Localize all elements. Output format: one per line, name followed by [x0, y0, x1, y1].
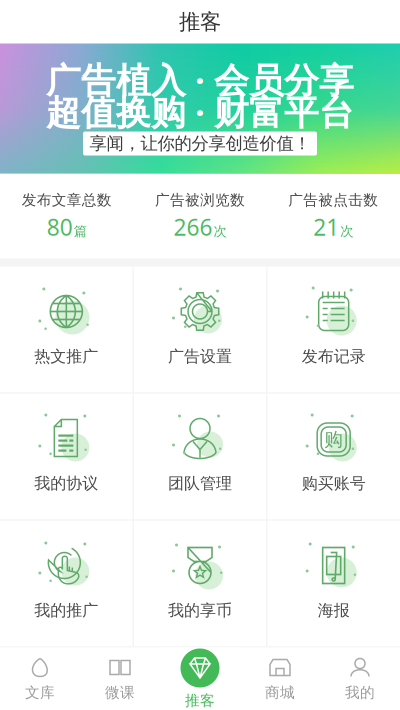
button[interactable]: 广告设置: [134, 266, 266, 392]
staticText: 热文推广: [34, 347, 98, 366]
staticText: 广告被浏览数: [155, 191, 245, 209]
staticText: 我的协议: [34, 474, 98, 493]
staticText: 海报: [318, 601, 350, 620]
staticText: 我的: [345, 683, 375, 701]
button[interactable]: 发布记录: [267, 266, 400, 392]
staticText: 超值换购 · 财富平台: [46, 88, 354, 134]
staticText: 购: [324, 428, 343, 451]
button[interactable]: 购: [267, 393, 400, 519]
button[interactable]: 我的: [320, 647, 400, 709]
staticText: 推客: [185, 691, 215, 709]
staticText: 266: [173, 212, 212, 242]
staticText: 我的享币: [168, 601, 232, 620]
button[interactable]: 文库: [0, 647, 80, 709]
staticText: 次: [340, 223, 353, 240]
button[interactable]: 团队管理: [134, 393, 266, 519]
staticText: 文库: [25, 683, 55, 701]
button[interactable]: 我的享币: [134, 520, 266, 646]
staticText: 次: [213, 223, 226, 240]
staticText: 篇: [74, 223, 87, 240]
staticText: 80: [47, 212, 73, 242]
staticText: 享闻，让你的分享创造价值！: [89, 133, 310, 154]
staticText: 发布文章总数: [22, 191, 112, 209]
button[interactable]: 海报: [267, 520, 400, 646]
staticText: 推客: [179, 9, 221, 35]
button[interactable]: 微课: [80, 647, 160, 709]
staticText: 广告设置: [168, 347, 232, 366]
staticText: 21: [313, 212, 339, 242]
button[interactable]: 我的协议: [0, 393, 133, 519]
button[interactable]: 我的推广: [0, 520, 133, 646]
staticText: 广告植入 · 会员分享: [46, 56, 354, 102]
button[interactable]: 热文推广: [0, 266, 133, 392]
staticText: 团队管理: [168, 474, 232, 493]
staticText: 发布记录: [302, 347, 366, 366]
button[interactable]: 推客: [160, 647, 240, 709]
staticText: 我的推广: [34, 601, 98, 620]
staticText: 购买账号: [302, 474, 366, 493]
staticText: 微课: [105, 683, 135, 701]
button[interactable]: 商城: [240, 647, 320, 709]
staticText: 广告被点击数: [288, 191, 378, 209]
staticText: 商城: [265, 683, 295, 701]
